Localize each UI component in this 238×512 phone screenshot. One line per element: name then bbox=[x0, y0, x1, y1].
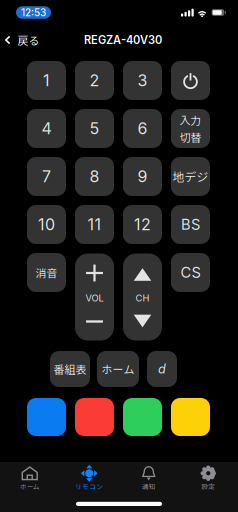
staticText: 1 bbox=[43, 71, 50, 90]
staticText: 入力 bbox=[179, 112, 201, 128]
button[interactable]: リモコン bbox=[59, 462, 119, 512]
button[interactable]: 8 bbox=[75, 157, 114, 196]
staticText: 6 bbox=[137, 119, 147, 138]
staticText: 7 bbox=[42, 167, 51, 186]
button[interactable]: 7 bbox=[27, 157, 66, 196]
button[interactable]: 青ボタン bbox=[27, 398, 66, 436]
staticText: 9 bbox=[137, 167, 147, 186]
staticText: 通知 bbox=[142, 481, 156, 491]
button[interactable]: チャンネル bbox=[123, 253, 162, 340]
staticText: 戻る bbox=[17, 32, 39, 48]
staticText: ホーム bbox=[101, 361, 134, 377]
button[interactable]: 通知 bbox=[119, 462, 178, 512]
staticText: CH bbox=[135, 292, 149, 304]
button[interactable]: 2 bbox=[75, 61, 114, 100]
staticText: 8 bbox=[89, 167, 99, 186]
button[interactable]: 戻る bbox=[0, 28, 45, 52]
staticText: 番組表 bbox=[53, 361, 86, 377]
staticText: 切替 bbox=[179, 129, 201, 145]
staticText: d bbox=[158, 361, 166, 377]
button[interactable]: 10 bbox=[27, 205, 66, 244]
button[interactable]: 番組表 bbox=[50, 351, 90, 387]
staticText: 設定 bbox=[201, 481, 215, 491]
button[interactable]: 9 bbox=[123, 157, 162, 196]
staticText: 12 bbox=[134, 215, 151, 234]
staticText: 3 bbox=[137, 71, 147, 90]
staticText: 12:53 bbox=[21, 6, 46, 19]
staticText: 5 bbox=[89, 119, 99, 138]
button[interactable]: 12 bbox=[123, 205, 162, 244]
button[interactable]: 11 bbox=[75, 205, 114, 244]
button[interactable]: CS bbox=[171, 253, 210, 292]
staticText: 2 bbox=[89, 71, 99, 90]
button[interactable]: 設定 bbox=[178, 462, 238, 512]
staticText: 11 bbox=[87, 215, 101, 234]
button[interactable]: 5 bbox=[75, 109, 114, 148]
staticText: BS bbox=[181, 216, 200, 233]
button[interactable]: 地デジ bbox=[171, 157, 210, 196]
button[interactable]: 緑ボタン bbox=[123, 398, 162, 436]
button[interactable]: 入力 bbox=[171, 109, 210, 148]
staticText: 10 bbox=[38, 215, 55, 234]
staticText: 消音 bbox=[35, 265, 57, 280]
button[interactable]: 音量 bbox=[75, 253, 114, 340]
staticText: CS bbox=[180, 264, 200, 281]
button[interactable]: 赤ボタン bbox=[75, 398, 114, 436]
staticText: 地デジ bbox=[172, 168, 208, 185]
button[interactable]: 6 bbox=[123, 109, 162, 148]
button[interactable]: 1 bbox=[27, 61, 66, 100]
button[interactable]: 黄ボタン bbox=[171, 398, 210, 436]
staticText: ホーム bbox=[20, 481, 40, 491]
button[interactable]: 3 bbox=[123, 61, 162, 100]
staticText: リモコン bbox=[75, 481, 103, 491]
button[interactable]: BS bbox=[171, 205, 210, 244]
staticText: VOL bbox=[85, 292, 103, 304]
button[interactable]: ホーム bbox=[97, 351, 139, 387]
staticText: REGZA-40V30 bbox=[84, 33, 162, 47]
button[interactable]: データ放送 bbox=[147, 351, 177, 387]
staticText: 4 bbox=[41, 119, 51, 138]
button[interactable]: 4 bbox=[27, 109, 66, 148]
button[interactable]: 消音 bbox=[27, 253, 66, 292]
button[interactable]: 電源 bbox=[171, 61, 210, 100]
button[interactable]: ホーム bbox=[0, 462, 59, 512]
